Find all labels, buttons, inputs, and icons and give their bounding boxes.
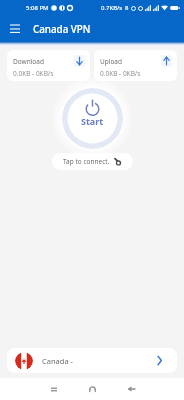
button[interactable]: Menu xyxy=(5,19,25,39)
staticText: Tap to connect. xyxy=(63,157,110,166)
button[interactable]: Tap to connect. xyxy=(52,153,133,170)
staticText: Canada - xyxy=(42,356,73,366)
button[interactable]: Home xyxy=(73,378,112,400)
button[interactable]: Start xyxy=(62,88,123,149)
button[interactable]: Back xyxy=(112,378,151,400)
button[interactable]: Recents xyxy=(34,378,73,400)
staticText: Download xyxy=(13,57,44,66)
staticText: Upload xyxy=(100,57,123,66)
staticText: 8 xyxy=(125,4,129,12)
staticText: 0.0KB - 0KB/s xyxy=(13,69,54,78)
button[interactable]: Download xyxy=(7,50,90,81)
staticText: Start xyxy=(81,115,104,127)
staticText: 0.7KB/s xyxy=(101,4,123,12)
staticText: Canada VPN xyxy=(33,23,91,36)
staticText: 0.0KB - 0KB/s xyxy=(100,69,141,78)
button[interactable]: Upload xyxy=(94,50,177,81)
button[interactable]: Canada - xyxy=(7,348,177,373)
staticText: 5:08 PM xyxy=(26,4,49,12)
